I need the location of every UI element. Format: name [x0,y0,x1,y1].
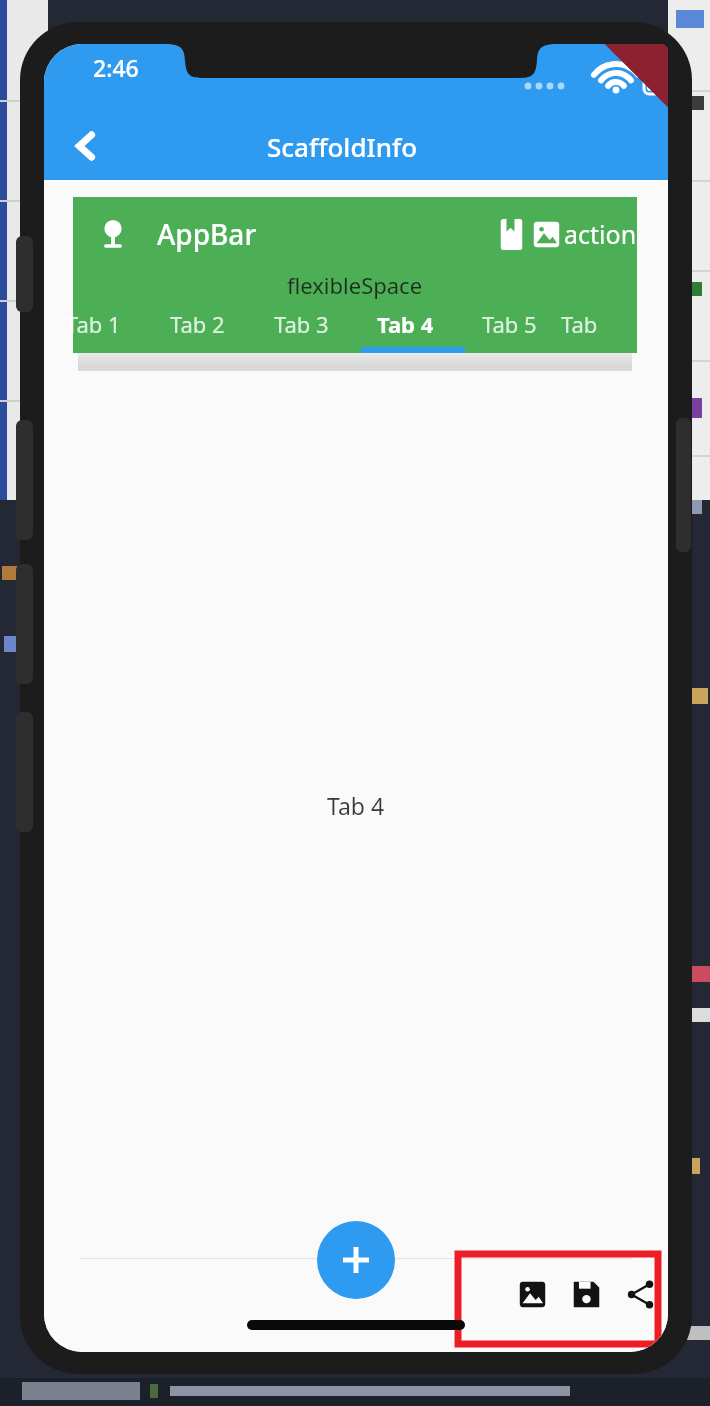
staticText: Tab 4 [377,309,434,339]
staticText: Tab 1 [66,309,121,339]
staticText: action [564,217,637,251]
button[interactable]: Tab 5 [457,295,561,353]
button[interactable]: Tab 3 [249,295,353,353]
button[interactable]: action [531,217,637,251]
staticText: 2:46 [93,52,139,83]
staticText: ScaffoldInfo [267,129,418,164]
staticText: Tab 2 [170,309,225,339]
button[interactable]: Tab 4 [353,295,457,353]
button[interactable]: Image [512,1274,552,1314]
staticText: flexibleSpace [287,270,423,300]
button[interactable]: Tab 6 [561,295,605,353]
button[interactable]: Add [317,1221,395,1299]
button[interactable]: Share [620,1274,660,1314]
staticText: Tab 6 [561,309,605,339]
button[interactable]: Back [58,118,114,174]
staticText: AppBar [157,215,257,253]
button[interactable]: Save [566,1274,606,1314]
button[interactable]: Nature [83,204,143,264]
button[interactable]: Bookmark [491,204,531,264]
button[interactable]: Tab 2 [145,295,249,353]
staticText: Tab 4 [327,790,385,821]
staticText: Tab 5 [482,309,537,339]
button[interactable]: Tab 1 [44,295,145,353]
staticText: Tab 3 [274,309,329,339]
